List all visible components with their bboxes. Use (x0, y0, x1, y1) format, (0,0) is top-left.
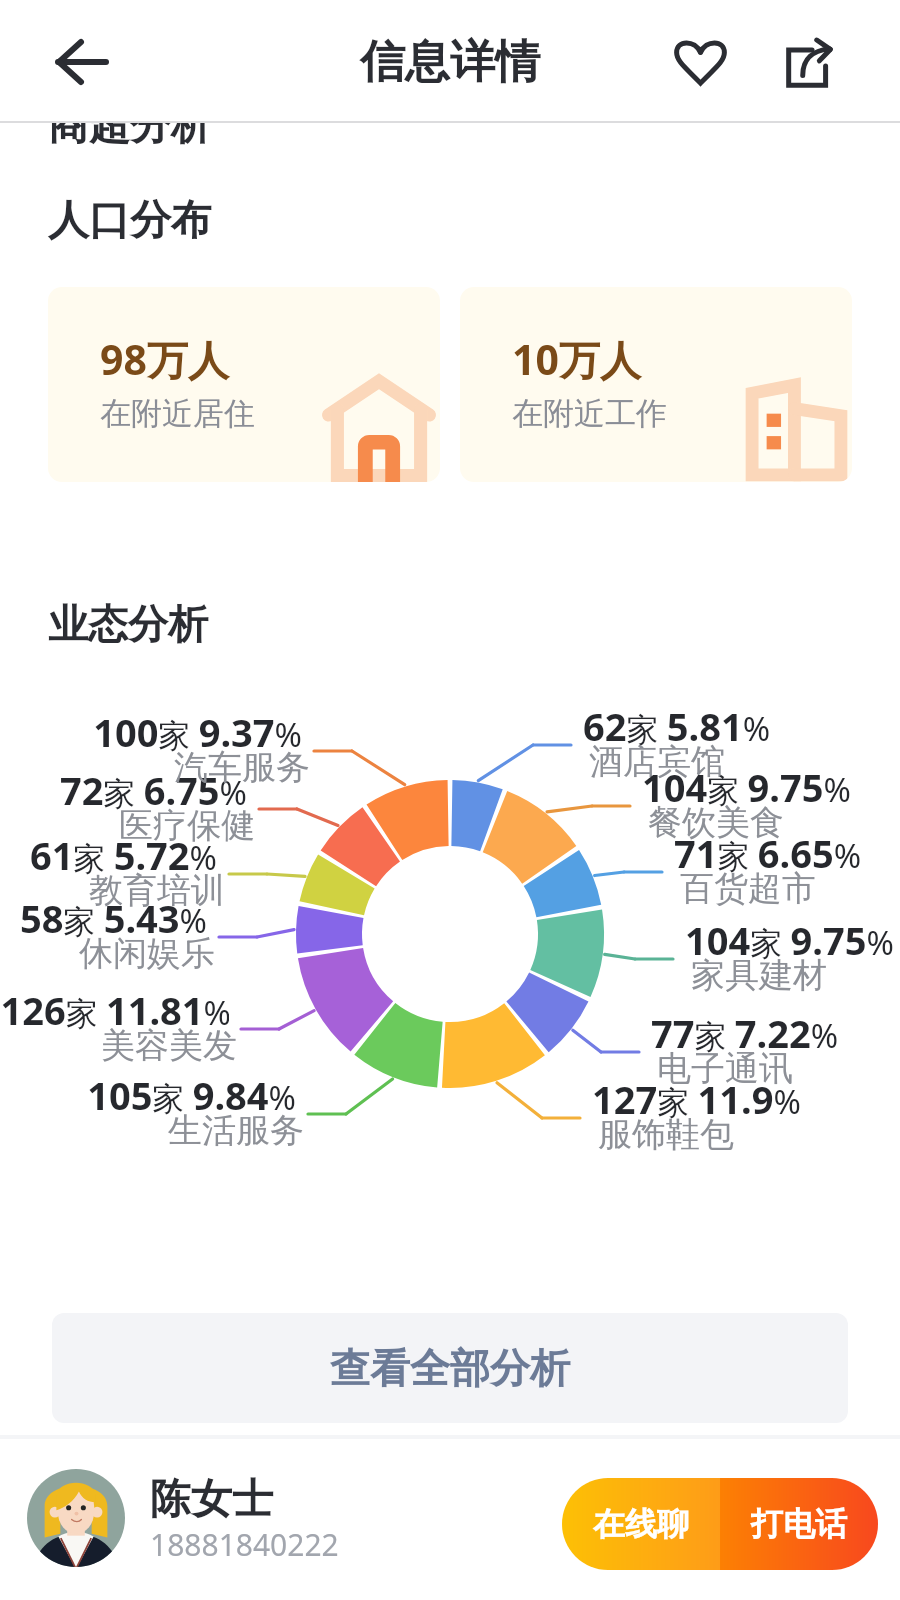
staticText: 98万人 (100, 331, 229, 387)
staticText: 62家 5.81% (583, 700, 771, 752)
staticText: 教育培训 (0, 869, 225, 912)
button[interactable]: 查看全部分析 (52, 1313, 848, 1423)
button[interactable]: Back (40, 18, 120, 106)
staticText: 家具建材 (691, 954, 827, 997)
staticText: 10万人 (512, 331, 641, 387)
staticText: 生活服务 (0, 1109, 304, 1152)
staticText: 陈女士 (150, 1474, 273, 1526)
button[interactable]: 在线聊 (562, 1478, 720, 1570)
staticText: 127家 11.9% (592, 1073, 801, 1125)
button[interactable]: Share (766, 21, 854, 109)
staticText: 医疗保健 (0, 804, 255, 847)
staticText: 商超分析 (48, 100, 212, 152)
staticText: 餐饮美食 (648, 801, 784, 844)
button[interactable]: 10万人 (460, 287, 852, 482)
staticText: 在线聊 (593, 1504, 689, 1544)
staticText: 业态分析 (48, 599, 208, 649)
staticText: 105家 9.84% (0, 1069, 296, 1121)
staticText: 104家 9.75% (685, 914, 894, 966)
button[interactable]: 打电话 (720, 1478, 878, 1570)
staticText: 58家 5.43% (0, 892, 207, 944)
staticText: 126家 11.81% (0, 984, 229, 1036)
staticText: 休闲娱乐 (0, 932, 215, 975)
staticText: 18881840222 (150, 1524, 339, 1565)
staticText: 电子通讯 (657, 1047, 793, 1090)
staticText: 信息详情 (360, 34, 540, 91)
button[interactable]: 98万人 (48, 287, 440, 482)
staticText: 打电话 (751, 1504, 847, 1544)
staticText: 在附近居住 (100, 394, 255, 433)
button[interactable]: Favorite (656, 17, 744, 105)
staticText: 77家 7.22% (651, 1007, 839, 1059)
staticText: 人口分布 (48, 195, 212, 247)
staticText: 104家 9.75% (642, 761, 851, 813)
staticText: 汽车服务 (0, 746, 310, 789)
staticText: 服饰鞋包 (598, 1113, 734, 1156)
staticText: 72家 6.75% (0, 764, 247, 816)
staticText: 61家 5.72% (0, 829, 217, 881)
staticText: 酒店宾馆 (589, 740, 725, 783)
staticText: 71家 6.65% (674, 827, 862, 879)
staticText: 在附近工作 (512, 394, 667, 433)
staticText: 百货超市 (680, 867, 816, 910)
staticText: 100家 9.37% (0, 706, 302, 758)
staticText: 查看全部分析 (330, 1343, 570, 1393)
staticText: 美容美发 (0, 1024, 237, 1067)
